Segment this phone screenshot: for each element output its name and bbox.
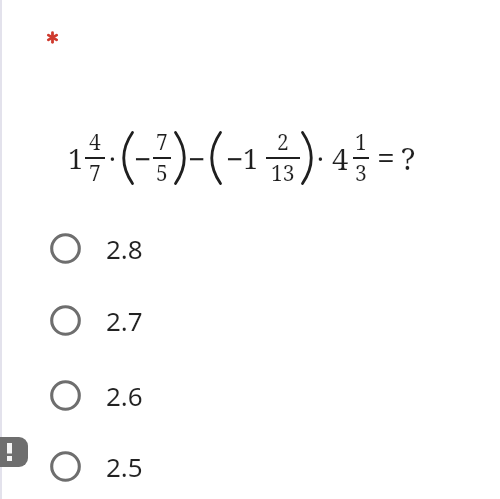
- staticText: 13: [271, 159, 295, 188]
- button[interactable]: 2.7: [50, 298, 143, 342]
- staticText: 1: [68, 140, 84, 177]
- staticText: 7: [89, 159, 101, 188]
- button[interactable]: [0, 437, 28, 467]
- staticText: −: [226, 138, 244, 179]
- staticText: −: [134, 138, 152, 179]
- button[interactable]: 2.5: [50, 444, 143, 488]
- staticText: ·: [109, 140, 116, 177]
- staticText: =: [377, 136, 395, 180]
- staticText: 1: [355, 128, 367, 157]
- staticText: 4: [89, 128, 101, 157]
- staticText: ?: [401, 138, 416, 179]
- staticText: −: [188, 138, 206, 179]
- button[interactable]: 2.8: [50, 226, 143, 270]
- staticText: ·: [317, 140, 324, 177]
- staticText: 3: [355, 159, 367, 188]
- staticText: 2.7: [106, 303, 143, 338]
- staticText: 7: [156, 128, 168, 157]
- button[interactable]: 2.6: [50, 373, 143, 417]
- staticText: 4: [332, 139, 349, 178]
- staticText: 5: [156, 159, 168, 188]
- staticText: 2.5: [106, 449, 143, 484]
- staticText: 2: [277, 128, 289, 157]
- staticText: 2.8: [106, 231, 143, 266]
- staticText: 2.6: [106, 378, 143, 413]
- staticText: 1: [243, 140, 259, 177]
